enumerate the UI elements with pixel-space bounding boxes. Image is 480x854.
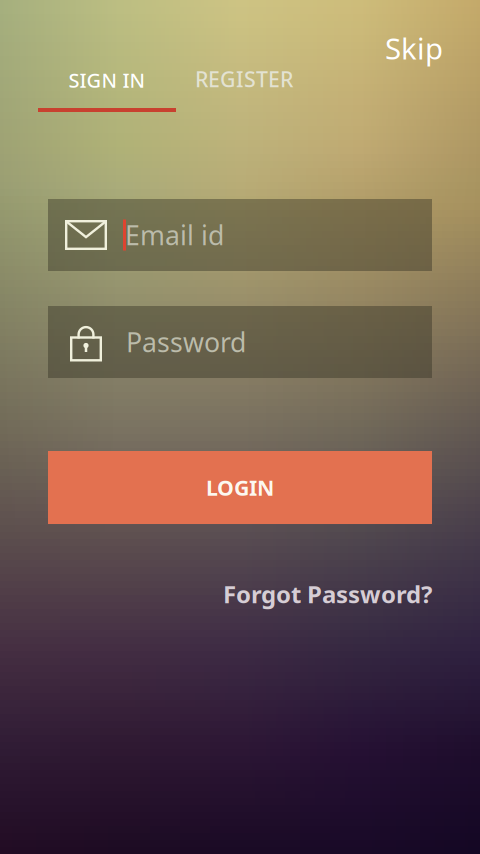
staticText: REGISTER xyxy=(195,65,293,93)
staticText: SIGN IN xyxy=(68,67,145,93)
staticText: Forgot Password? xyxy=(223,578,432,610)
button[interactable]: Skip xyxy=(343,26,443,70)
button[interactable]: Forgot Password? xyxy=(172,574,432,614)
button[interactable]: LOGIN xyxy=(48,451,432,524)
button[interactable]: SIGN IN xyxy=(39,60,175,100)
staticText: Password xyxy=(126,324,246,360)
button[interactable]: REGISTER xyxy=(183,59,305,99)
staticText: Skip xyxy=(385,28,443,67)
staticText: Email id xyxy=(125,217,224,253)
staticText: LOGIN xyxy=(206,473,274,502)
